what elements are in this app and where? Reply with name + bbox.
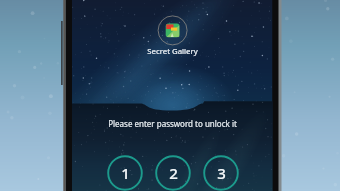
button[interactable]: 2 [156, 156, 190, 190]
staticText: 1 [121, 163, 130, 183]
button[interactable]: Secret Gallery [92, 46, 253, 57]
staticText: 3 [217, 163, 226, 183]
staticText: Secret Gallery [147, 46, 198, 57]
button[interactable]: 3 [204, 156, 238, 190]
button[interactable]: 1 [108, 156, 142, 190]
staticText: 2 [169, 163, 178, 183]
staticText: Please enter password to unlock it [108, 118, 237, 129]
